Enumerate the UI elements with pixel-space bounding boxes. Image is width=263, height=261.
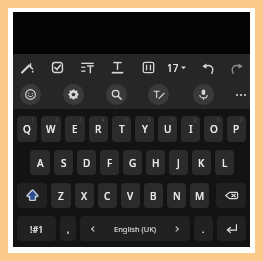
staticText: 8 [194,117,197,123]
button[interactable]: !#1 [17,216,56,241]
button[interactable]: G [123,150,142,175]
staticText: L [222,156,228,170]
staticText: N [173,189,181,203]
staticText: 4 [102,117,105,123]
button[interactable]: F [100,150,119,175]
button[interactable]: More options [231,85,251,105]
button[interactable]: Shift [17,183,47,208]
button[interactable]: N [167,183,186,208]
button[interactable]: Z [51,183,71,208]
staticText: 9 [217,117,220,123]
button[interactable]: Search [106,84,127,105]
staticText: O [210,122,218,136]
staticText: 0 [240,117,243,123]
staticText: !#1 [30,223,44,235]
button[interactable]: Text style [105,54,129,81]
staticText: Y [142,122,148,136]
staticText: S [61,156,67,170]
button[interactable]: Paragraph format [75,54,99,81]
button[interactable]: Voice input [193,84,214,105]
button[interactable]: V [121,183,140,208]
button[interactable]: 5 [112,116,131,142]
button[interactable]: Translate [148,84,169,105]
button[interactable]: , [60,216,76,241]
staticText: . [202,223,205,235]
staticText: C [104,189,111,203]
staticText: X [81,189,88,203]
staticText: U [164,122,172,136]
staticText: 17 [167,61,179,75]
staticText: Q [23,122,31,136]
button[interactable]: Backspace [216,183,246,208]
button[interactable]: S [54,150,73,175]
button[interactable]: 9 [204,116,223,142]
staticText: F [107,156,113,170]
button[interactable]: X [75,183,94,208]
staticText: I [189,122,193,136]
staticText: W [46,122,56,136]
button[interactable]: 3 [65,116,85,142]
button[interactable]: Checklist [45,54,69,81]
staticText: P [233,122,240,136]
staticText: D [83,156,91,170]
button[interactable]: 6 [135,116,154,142]
button[interactable]: Emoji [20,84,41,105]
button[interactable]: 17 [161,54,191,81]
staticText: V [127,189,134,203]
button[interactable]: Enter [217,216,246,241]
button[interactable]: Redo [224,54,248,81]
staticText: , [67,223,70,235]
button[interactable]: 0 [227,116,246,142]
staticText: J [177,156,180,170]
button[interactable]: 2 [41,116,61,142]
staticText: H [152,156,160,170]
button[interactable]: Undo [196,54,220,81]
button[interactable]: . [194,216,213,241]
button[interactable]: C [98,183,117,208]
button[interactable]: Settings [63,84,84,105]
button[interactable]: English (UK) [80,216,190,241]
button[interactable]: A [30,150,50,175]
staticText: E [72,122,78,136]
staticText: G [129,156,137,170]
staticText: 3 [79,117,82,123]
button[interactable]: 1 [17,116,37,142]
staticText: T [119,122,125,136]
staticText: 2 [55,117,58,123]
button[interactable]: Insert [136,54,160,81]
staticText: Z [58,189,64,203]
staticText: K [198,156,205,170]
staticText: 6 [148,117,151,123]
button[interactable]: M [190,183,209,208]
button[interactable]: L [215,150,234,175]
button[interactable]: 8 [181,116,200,142]
staticText: 1 [31,117,34,123]
button[interactable]: B [144,183,163,208]
staticText: A [37,156,44,170]
staticText: B [150,189,157,203]
button[interactable]: Smart compose [15,54,39,81]
staticText: English (UK) [114,224,157,234]
button[interactable]: 7 [158,116,177,142]
staticText: 7 [171,117,174,123]
button[interactable]: K [192,150,211,175]
staticText: 5 [125,117,128,123]
staticText: R [95,122,102,136]
staticText: M [195,189,205,203]
button[interactable]: H [146,150,165,175]
button[interactable]: D [77,150,96,175]
button[interactable]: 4 [89,116,108,142]
button[interactable]: J [169,150,188,175]
